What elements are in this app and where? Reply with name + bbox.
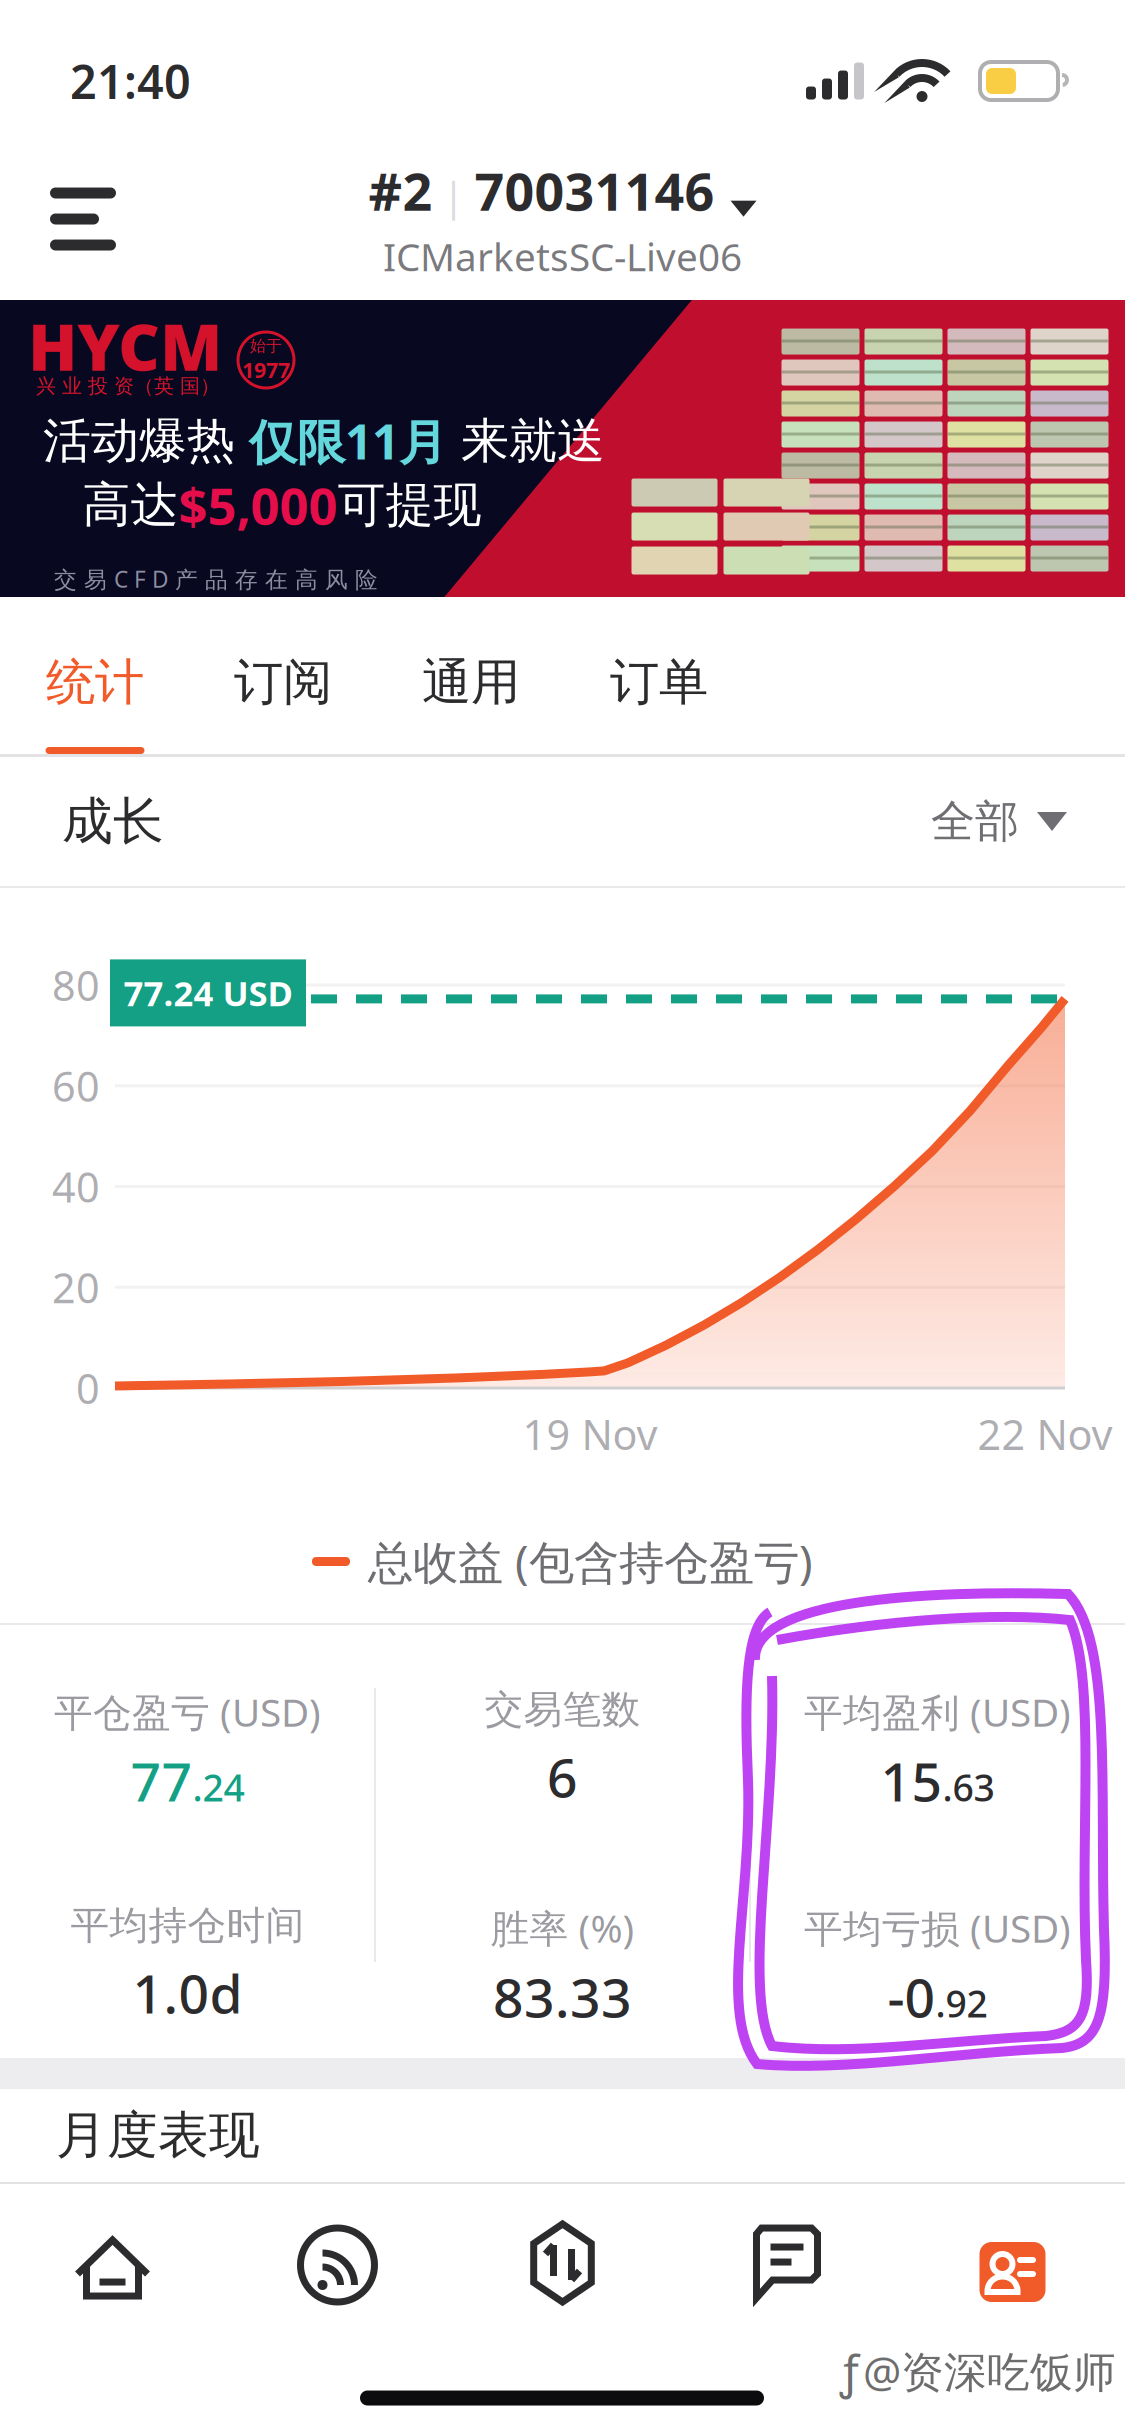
staticText: 70031146	[474, 156, 714, 225]
staticText: 交 易 C F D 产 品 存 在 高 风 险	[54, 564, 378, 594]
staticText: .24	[192, 1762, 244, 1812]
staticText: .92	[935, 1978, 987, 2028]
staticText: 始于	[250, 336, 282, 356]
staticText: |	[432, 169, 474, 222]
button[interactable]: Quotes	[0, 2184, 225, 2302]
staticText: 交易笔数	[484, 1686, 640, 1733]
staticText: 通用	[422, 652, 520, 713]
button[interactable]: 通用	[377, 597, 565, 754]
staticText: HYCM	[28, 303, 222, 388]
staticText: 可提现	[337, 475, 481, 534]
staticText: 1.0d	[132, 1957, 242, 2028]
staticText: $5,000	[178, 471, 337, 539]
staticText: 来就送	[447, 411, 605, 470]
staticText: 60	[52, 1058, 100, 1113]
staticText: 仅限11月	[249, 409, 447, 473]
staticText: 平均亏损 (USD)	[804, 1902, 1071, 1953]
button[interactable]: #2	[368, 156, 756, 282]
staticText: 订阅	[234, 652, 332, 713]
staticText: .63	[942, 1762, 994, 1812]
staticText: 20	[52, 1260, 100, 1315]
staticText: 订单	[610, 652, 708, 713]
button[interactable]: HYCM advertisement	[0, 300, 1125, 597]
staticText: 22 Nov	[977, 1407, 1112, 1461]
staticText: 兴 业 投 资（英 国）	[36, 374, 220, 398]
staticText: 77.24 USD	[123, 970, 292, 1016]
staticText: 15	[880, 1745, 942, 1816]
staticText: 6	[547, 1741, 578, 1812]
staticText: -0	[887, 1961, 935, 2032]
button[interactable]: Trade	[450, 2184, 675, 2302]
button[interactable]: Messages	[675, 2184, 900, 2302]
staticText: #2	[368, 156, 432, 225]
button[interactable]: 统计	[1, 597, 189, 754]
button[interactable]: 订单	[565, 597, 753, 754]
button[interactable]: Menu	[28, 158, 138, 279]
staticText: 总收益 (包含持仓盈亏)	[368, 1531, 813, 1592]
staticText: 胜率 (%)	[490, 1902, 634, 1953]
staticText: 77	[130, 1745, 192, 1816]
staticText: ICMarketsSC-Live06	[383, 231, 742, 282]
staticText: 1977	[242, 356, 290, 384]
staticText: 平均持仓时间	[70, 1902, 304, 1949]
staticText: 0	[76, 1361, 100, 1415]
staticText: 19 Nov	[522, 1407, 657, 1461]
button[interactable]: 全部	[931, 774, 1067, 868]
staticText: 40	[52, 1159, 100, 1214]
staticText: 高达	[82, 475, 178, 534]
staticText: 全部	[931, 794, 1019, 848]
staticText: 80	[52, 958, 100, 1012]
staticText: ƒ	[840, 2341, 859, 2401]
staticText: 平均盈利 (USD)	[804, 1686, 1071, 1737]
button[interactable]: 订阅	[189, 597, 377, 754]
staticText: 活动爆热	[43, 411, 249, 470]
staticText: 月度表现	[56, 2104, 260, 2167]
button[interactable]: Accounts	[900, 2184, 1125, 2302]
staticText: 83.33	[493, 1961, 632, 2032]
staticText: 统计	[46, 652, 144, 713]
button[interactable]: Signals	[225, 2184, 450, 2302]
staticText: 成长	[62, 790, 164, 853]
staticText: @资深吃饭师	[863, 2343, 1116, 2399]
staticText: 平仓盈亏 (USD)	[54, 1686, 321, 1737]
staticText: 21:40	[70, 50, 191, 112]
